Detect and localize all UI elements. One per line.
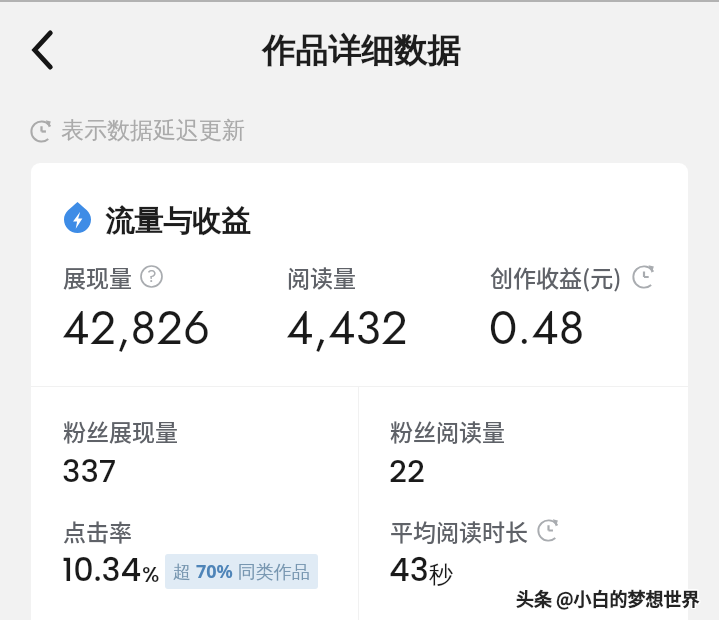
staticText: 4,432 — [286, 294, 408, 362]
staticText: 43 — [389, 547, 429, 592]
staticText: % — [142, 559, 160, 590]
staticText: 粉丝阅读量 — [390, 414, 505, 447]
staticText: 超 — [173, 559, 196, 584]
staticText: 70% — [196, 559, 233, 584]
staticText: 头条 @小白的梦想世界 — [517, 584, 701, 610]
staticText: 10.34 — [62, 547, 142, 592]
staticText: 粉丝展现量 — [63, 414, 178, 447]
staticText: 42,826 — [62, 294, 211, 362]
staticText: 展现量 — [63, 260, 132, 293]
staticText: 头条 @小白的梦想世界 — [516, 584, 700, 610]
staticText: 头条 @小白的梦想世界 — [515, 585, 699, 611]
staticText: 阅读量 — [287, 260, 356, 293]
button[interactable]: Back — [17, 25, 67, 75]
staticText: 平均阅读时长 — [390, 514, 528, 547]
staticText: 同类作品 — [233, 559, 310, 584]
staticText: 0.48 — [489, 294, 585, 362]
staticText: 创作收益(元) — [490, 260, 622, 293]
staticText: 作品详细数据 — [262, 30, 460, 72]
staticText: 流量与收益 — [105, 203, 250, 240]
staticText: 点击率 — [63, 514, 132, 547]
staticText: 22 — [389, 449, 425, 492]
staticText: 秒 — [429, 560, 453, 590]
staticText: ? — [147, 264, 157, 287]
staticText: 头条 @小白的梦想世界 — [516, 585, 700, 611]
staticText: 头条 @小白的梦想世界 — [515, 586, 699, 612]
staticText: 337 — [62, 449, 117, 492]
staticText: 头条 @小白的梦想世界 — [517, 586, 701, 612]
staticText: 头条 @小白的梦想世界 — [515, 584, 699, 610]
staticText: 头条 @小白的梦想世界 — [516, 586, 700, 612]
staticText: 头条 @小白的梦想世界 — [517, 585, 701, 611]
staticText: 表示数据延迟更新 — [61, 116, 245, 145]
